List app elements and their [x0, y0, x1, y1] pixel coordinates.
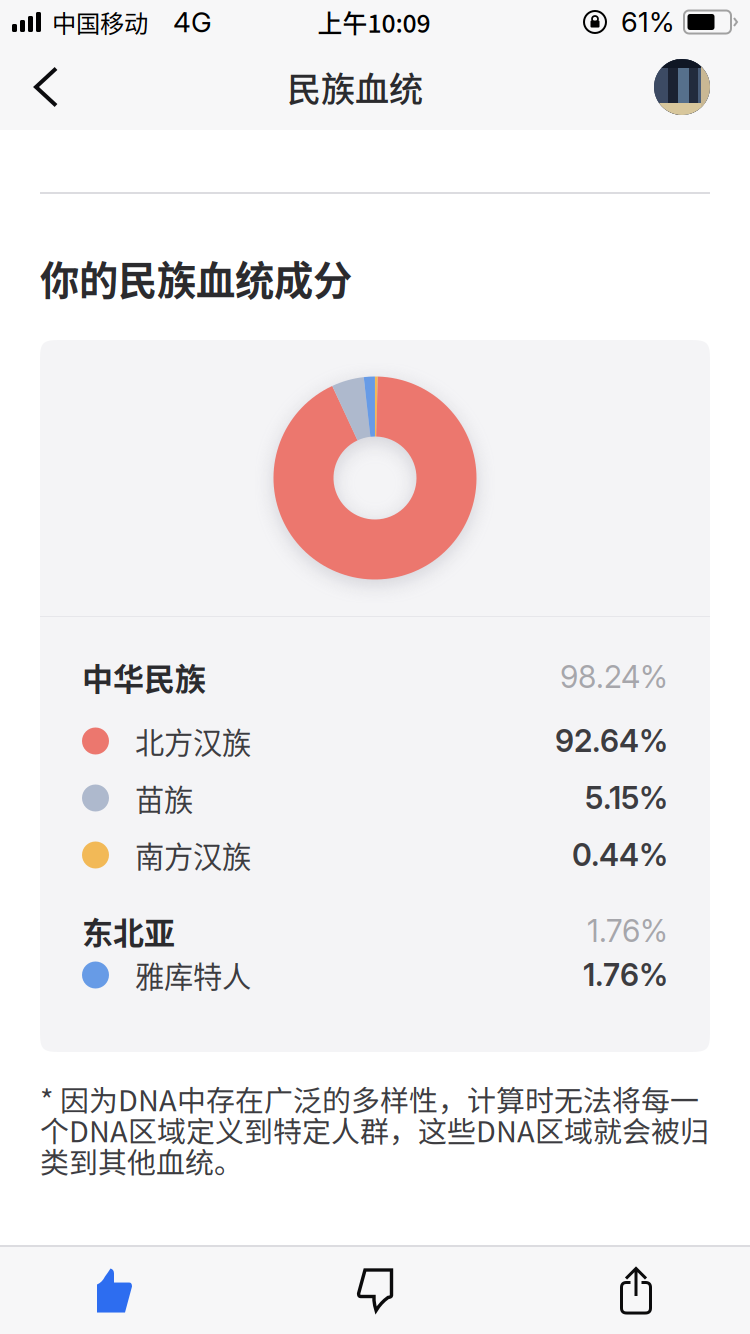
- button[interactable]: Profile: [614, 44, 750, 130]
- staticText: 98.24%: [560, 659, 668, 695]
- staticText: 雅库特人: [135, 954, 251, 996]
- button[interactable]: Back: [0, 44, 92, 130]
- staticText: 中华民族: [82, 655, 206, 699]
- staticText: 民族血统: [287, 62, 423, 112]
- staticText: 上午10:09: [317, 4, 430, 40]
- staticText: 61%: [621, 5, 675, 38]
- staticText: 北方汉族: [135, 720, 251, 762]
- staticText: * 因为DNA中存在广泛的多样性，计算时无法将每一个DNA区域定义到特定人群，这…: [40, 1083, 709, 1176]
- button[interactable]: Like: [0, 1247, 228, 1334]
- staticText: 南方汉族: [135, 834, 251, 876]
- staticText: 中国移动: [52, 4, 148, 40]
- staticText: 东北亚: [82, 909, 175, 953]
- button[interactable]: Dislike: [228, 1247, 522, 1334]
- button[interactable]: Share: [522, 1247, 750, 1334]
- staticText: 4G: [173, 5, 212, 39]
- staticText: 1.76%: [587, 913, 668, 949]
- staticText: 苗族: [135, 777, 193, 819]
- staticText: 你的民族血统成分: [40, 250, 352, 306]
- staticText: 5.15%: [585, 780, 668, 816]
- staticText: 92.64%: [555, 723, 668, 759]
- staticText: 0.44%: [572, 837, 668, 873]
- staticText: 1.76%: [583, 957, 668, 993]
